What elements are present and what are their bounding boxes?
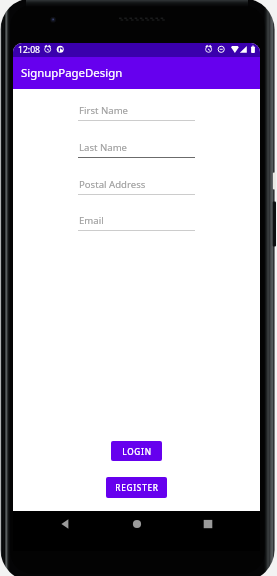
staticText: Email — [79, 214, 104, 227]
staticText: SignupPageDesign — [21, 65, 123, 81]
staticText: 12:08 — [18, 44, 40, 56]
staticText: Postal Address — [79, 178, 146, 191]
button[interactable]: Postal Address — [78, 178, 195, 195]
button[interactable]: Last Name — [78, 141, 195, 158]
button[interactable]: Email — [78, 214, 195, 231]
staticText: LOGIN — [122, 446, 152, 457]
button[interactable]: REGISTER — [106, 477, 167, 498]
button[interactable]: First Name — [78, 104, 195, 121]
staticText: Last Name — [79, 141, 128, 154]
staticText: REGISTER — [115, 482, 159, 493]
staticText: First Name — [79, 104, 129, 117]
button[interactable]: SignupPageDesign — [13, 57, 260, 89]
button[interactable]: Recents — [196, 512, 220, 536]
button[interactable]: Back — [53, 512, 77, 536]
button[interactable]: Home — [125, 512, 149, 536]
button[interactable]: LOGIN — [111, 441, 162, 461]
